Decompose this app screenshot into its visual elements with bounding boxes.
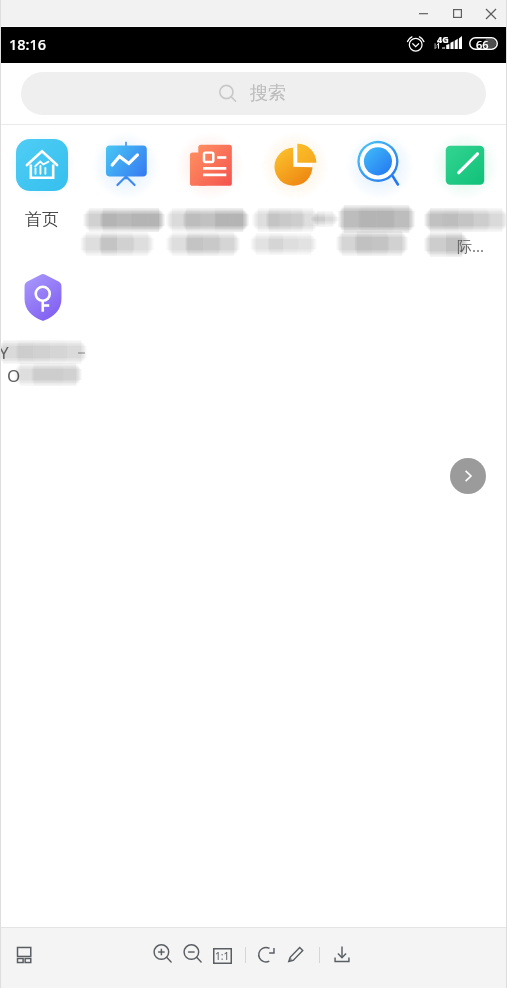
button[interactable] xyxy=(0,139,84,191)
staticText: 1:1 xyxy=(215,949,230,963)
button[interactable]: Maximize xyxy=(440,1,474,26)
button[interactable]: Rotate xyxy=(254,941,280,967)
button[interactable]: Next page xyxy=(450,458,486,494)
button[interactable] xyxy=(337,139,422,191)
staticText: 66 xyxy=(476,37,489,50)
button[interactable]: Close xyxy=(474,1,507,26)
button[interactable] xyxy=(168,139,252,191)
staticText: 搜索 xyxy=(250,82,286,105)
staticText: 4G xyxy=(437,33,449,45)
button[interactable]: Zoom out xyxy=(180,941,206,967)
staticText: 际... xyxy=(457,236,485,256)
button[interactable]: Minimize xyxy=(406,1,440,26)
staticText: 18:16 xyxy=(9,34,47,54)
staticText: 首页 xyxy=(25,209,59,230)
button[interactable]: Thumbnail view xyxy=(11,941,39,969)
button[interactable] xyxy=(84,139,168,191)
button[interactable] xyxy=(17,273,69,325)
button[interactable] xyxy=(422,139,507,191)
button[interactable]: Edit xyxy=(283,941,309,967)
button[interactable]: Download xyxy=(329,941,355,967)
button[interactable] xyxy=(252,139,337,191)
button[interactable]: Zoom in xyxy=(150,941,176,967)
staticText: Y xyxy=(0,341,9,364)
button[interactable]: Actual size xyxy=(209,942,236,969)
button[interactable]: 搜索 xyxy=(21,72,486,115)
staticText: O xyxy=(7,364,21,387)
